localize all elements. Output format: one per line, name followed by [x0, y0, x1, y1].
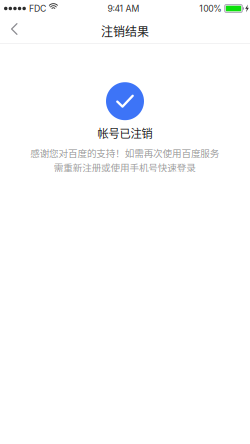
- staticText: 需重新注册或使用手机号快速登录: [54, 160, 196, 174]
- staticText: 9:41 AM: [107, 3, 139, 14]
- staticText: FDC: [29, 3, 46, 14]
- staticText: 感谢您对百度的支持！如需再次使用百度服务: [30, 146, 220, 160]
- staticText: 帐号已注销: [97, 125, 152, 141]
- button[interactable]: Back: [1, 20, 29, 43]
- staticText: 100%: [199, 3, 222, 14]
- staticText: 注销结果: [101, 22, 149, 40]
